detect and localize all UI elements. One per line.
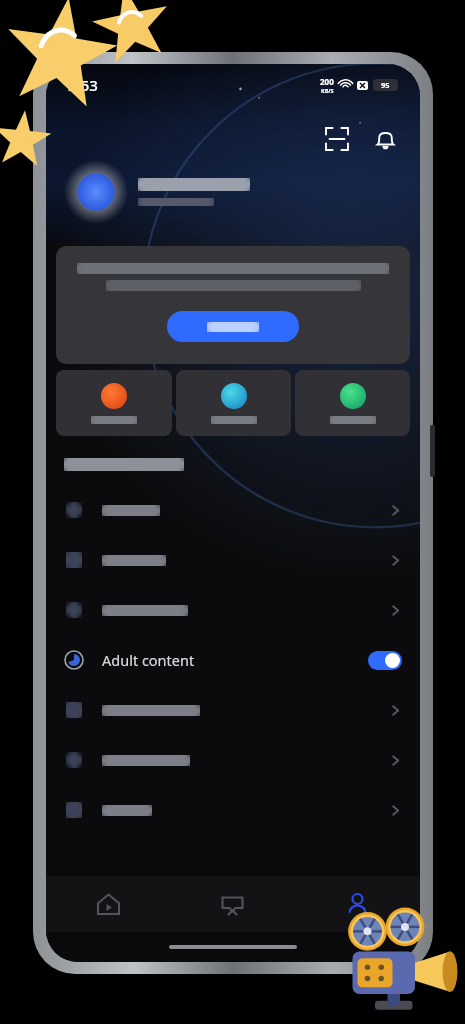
button[interactable]: [46, 785, 420, 835]
staticText: Adult content: [102, 650, 195, 670]
button[interactable]: [46, 685, 420, 735]
staticText: 2:53: [68, 75, 98, 95]
button[interactable]: Adult content: [46, 635, 420, 685]
staticText: 95: [381, 80, 390, 90]
button[interactable]: [46, 585, 420, 635]
button[interactable]: [46, 535, 420, 585]
button[interactable]: [46, 485, 420, 535]
button[interactable]: [295, 370, 410, 436]
button[interactable]: Home: [46, 876, 170, 932]
button[interactable]: [56, 246, 410, 364]
button[interactable]: Profile: [295, 876, 420, 932]
button[interactable]: Cast to TV: [170, 876, 295, 932]
button[interactable]: Adult content toggle, on: [368, 651, 402, 670]
button[interactable]: [176, 370, 291, 436]
button[interactable]: [46, 735, 420, 785]
button[interactable]: [64, 160, 250, 224]
button[interactable]: [56, 370, 172, 436]
button[interactable]: Scan QR code: [318, 120, 356, 158]
staticText: 200: [320, 76, 334, 87]
button[interactable]: Notifications: [366, 120, 404, 158]
staticText: KB/S: [321, 87, 334, 94]
button[interactable]: [167, 311, 299, 342]
